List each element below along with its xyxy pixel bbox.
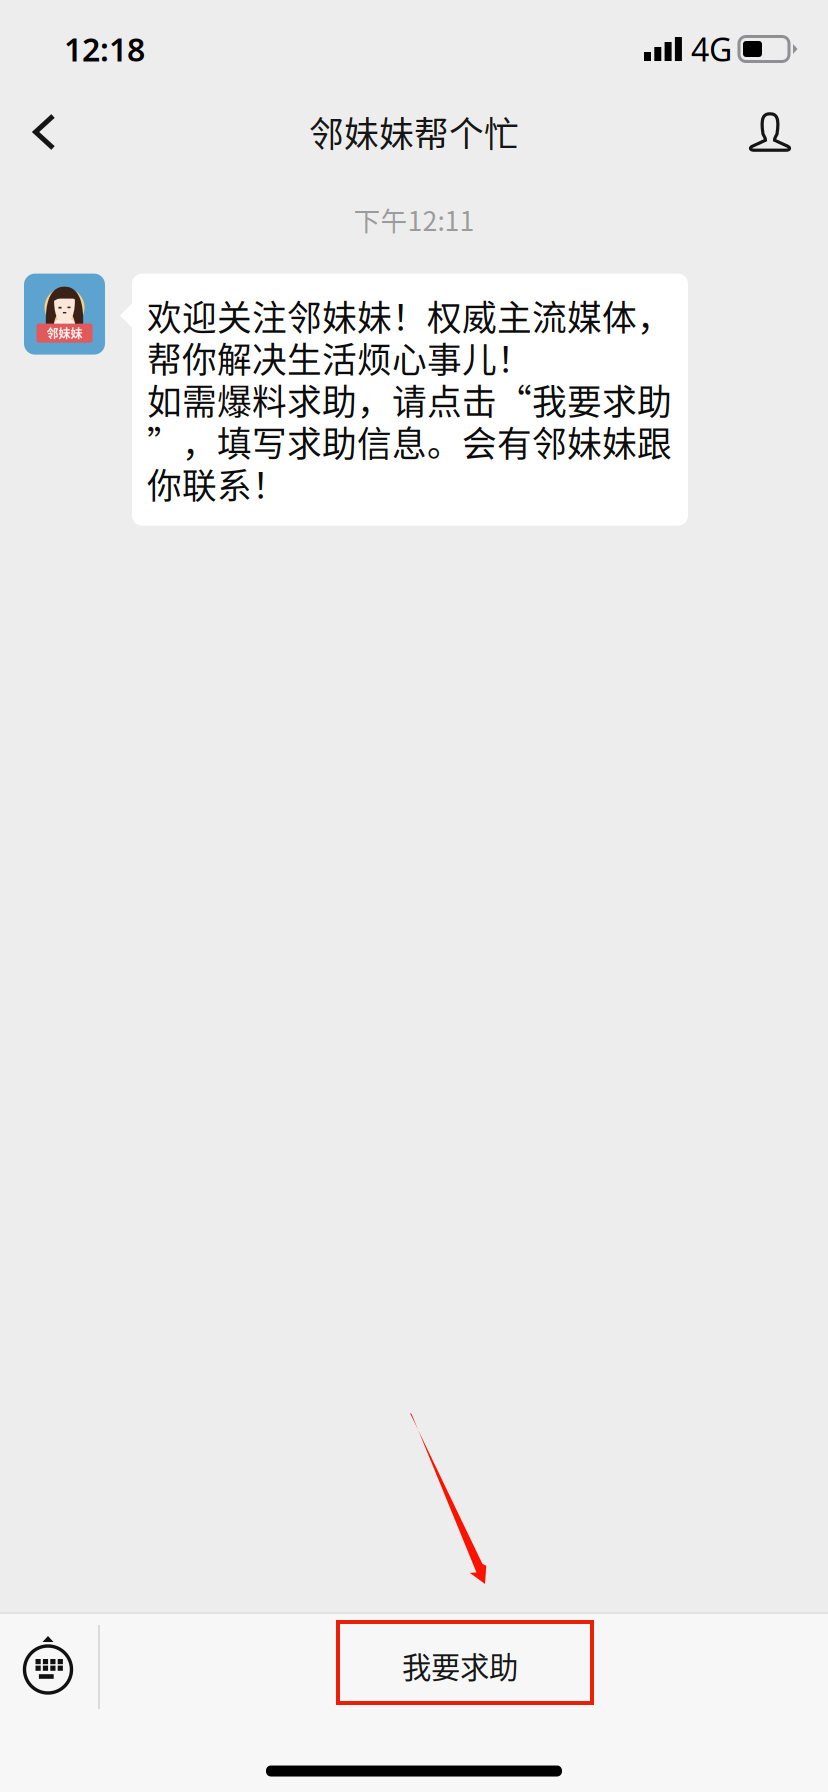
staticText: 帮你解决生活烦心事儿！ [147, 332, 532, 383]
staticText: 我要求助 [402, 1644, 518, 1687]
staticText: 4G [691, 28, 732, 70]
staticText: 下午12:11 [353, 200, 474, 239]
staticText: 欢迎关注邻妹妹！权威主流媒体， [147, 290, 672, 341]
button[interactable]: Back [0, 88, 113, 176]
staticText: 你联系！ [147, 458, 287, 509]
staticText: 邻妹妹帮个忙 [309, 107, 519, 157]
button[interactable]: Contact info [726, 88, 828, 176]
button[interactable]: 我要求助 [336, 1620, 594, 1705]
button[interactable]: Keyboard [0, 1614, 96, 1712]
staticText: 如需爆料求助，请点击“我要求助 [147, 374, 672, 425]
staticText: 邻妹妹 [46, 324, 82, 342]
staticText: 12:18 [64, 28, 145, 70]
staticText: ”，填写求助信息。会有邻妹妹跟 [147, 416, 672, 467]
